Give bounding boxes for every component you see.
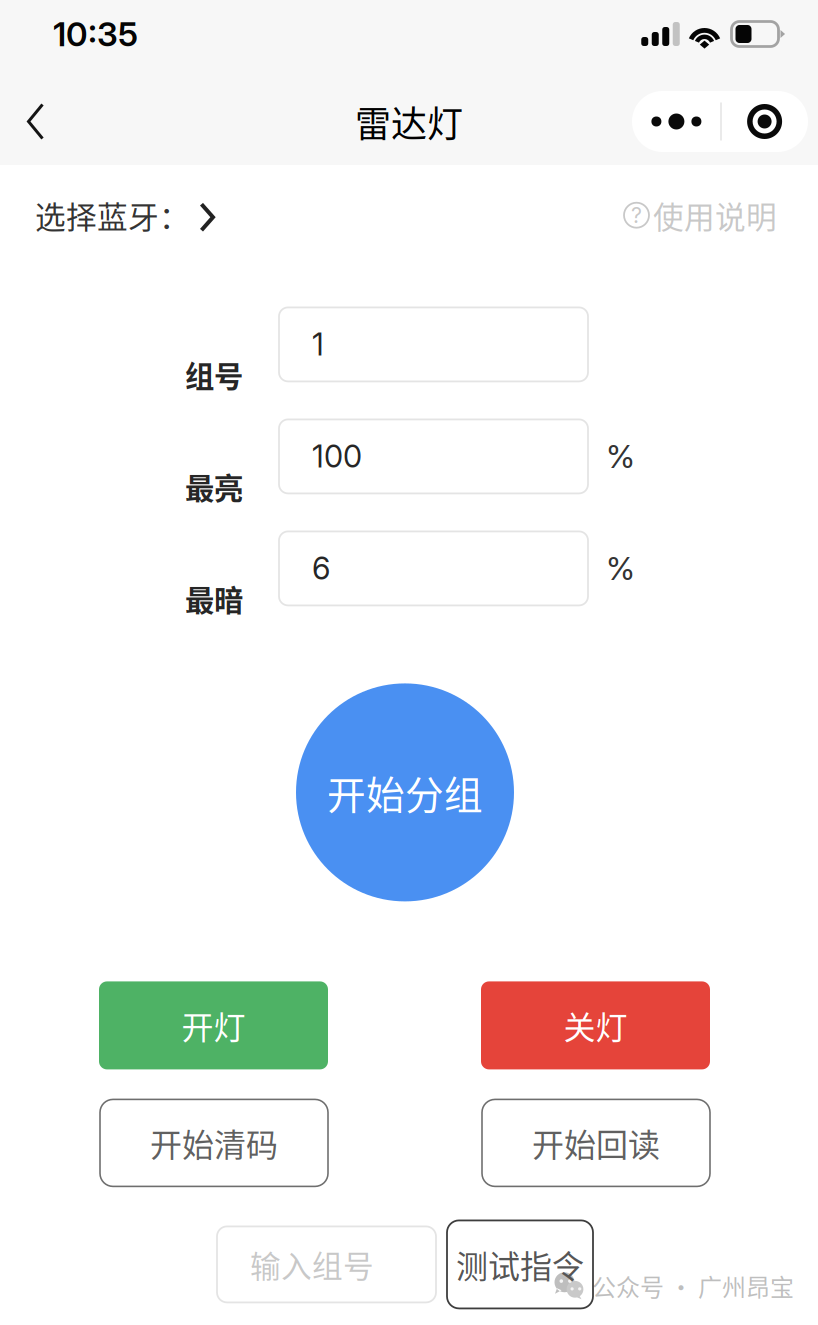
staticText: 100 xyxy=(312,438,362,475)
staticText: 输入组号 xyxy=(250,1242,374,1287)
staticText: 关灯 xyxy=(563,1002,627,1048)
staticText: % xyxy=(606,549,635,588)
staticText: 10:35 xyxy=(53,14,138,54)
button[interactable]: 开始回读 xyxy=(482,1099,710,1186)
button[interactable]: Close mini program xyxy=(722,91,808,152)
button[interactable]: Back xyxy=(0,81,78,161)
button[interactable]: 选择蓝牙： xyxy=(0,179,216,251)
button[interactable]: ? xyxy=(623,179,818,251)
staticText: 雷达灯 xyxy=(355,95,463,147)
staticText: 最暗 xyxy=(185,577,243,620)
staticText: 最亮 xyxy=(185,465,243,508)
staticText: 公众号 · 广州昂宝 xyxy=(592,1268,794,1303)
staticText: 组号 xyxy=(185,353,243,396)
button[interactable]: 开灯 xyxy=(99,981,328,1069)
staticText: 选择蓝牙： xyxy=(35,193,190,237)
staticText: 测试指令 xyxy=(456,1241,584,1287)
staticText: 开灯 xyxy=(181,1002,245,1048)
button[interactable]: 开始分组 xyxy=(296,683,514,901)
button[interactable]: 测试指令 xyxy=(447,1220,593,1308)
staticText: 开始分组 xyxy=(327,764,483,820)
button[interactable]: 关灯 xyxy=(481,981,710,1069)
staticText: 6 xyxy=(312,550,330,587)
button[interactable]: 开始清码 xyxy=(100,1099,328,1186)
staticText: 开始回读 xyxy=(532,1120,660,1166)
staticText: ? xyxy=(631,202,642,228)
staticText: 1 xyxy=(312,326,324,363)
staticText: % xyxy=(606,437,635,476)
button[interactable]: More options xyxy=(632,91,720,152)
staticText: 开始清码 xyxy=(150,1120,278,1166)
staticText: 使用说明 xyxy=(653,193,777,237)
